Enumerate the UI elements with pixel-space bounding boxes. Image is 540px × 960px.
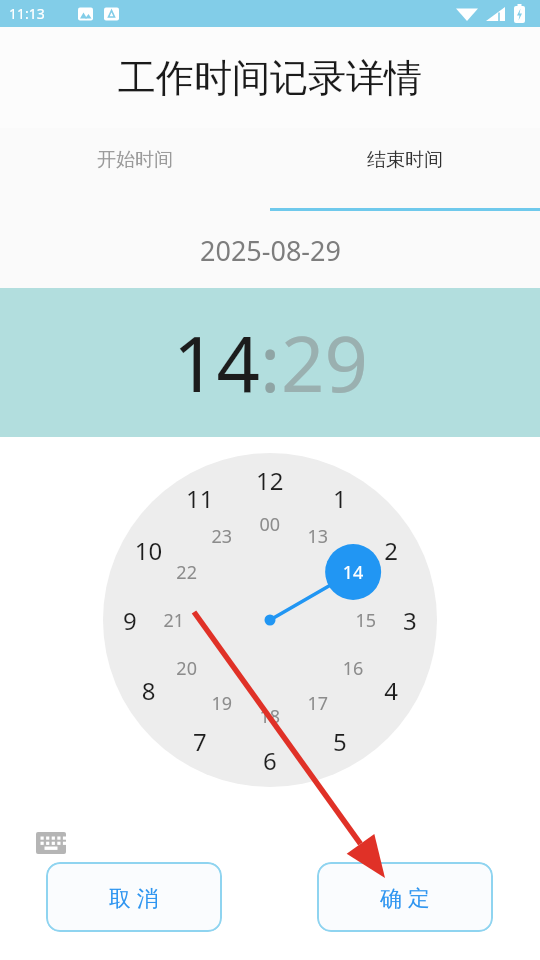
staticText: 11:13 — [9, 4, 45, 23]
staticText: 开始时间 — [97, 148, 173, 172]
staticText: : — [260, 311, 281, 415]
button[interactable]: Switch to text input — [36, 832, 66, 854]
button[interactable]: 结束时间 — [270, 128, 540, 212]
staticText: 工作时间记录详情 — [118, 54, 422, 102]
staticText: 取 消 — [109, 882, 159, 912]
staticText: 结束时间 — [367, 148, 443, 172]
staticText: 2025-08-29 — [200, 232, 341, 269]
button[interactable]: 29 — [281, 311, 368, 415]
button[interactable]: 确 定 — [317, 862, 493, 932]
staticText: 确 定 — [380, 882, 430, 912]
button[interactable]: 14 — [173, 311, 260, 415]
button[interactable]: 取 消 — [46, 862, 222, 932]
button[interactable]: 开始时间 — [0, 128, 270, 212]
